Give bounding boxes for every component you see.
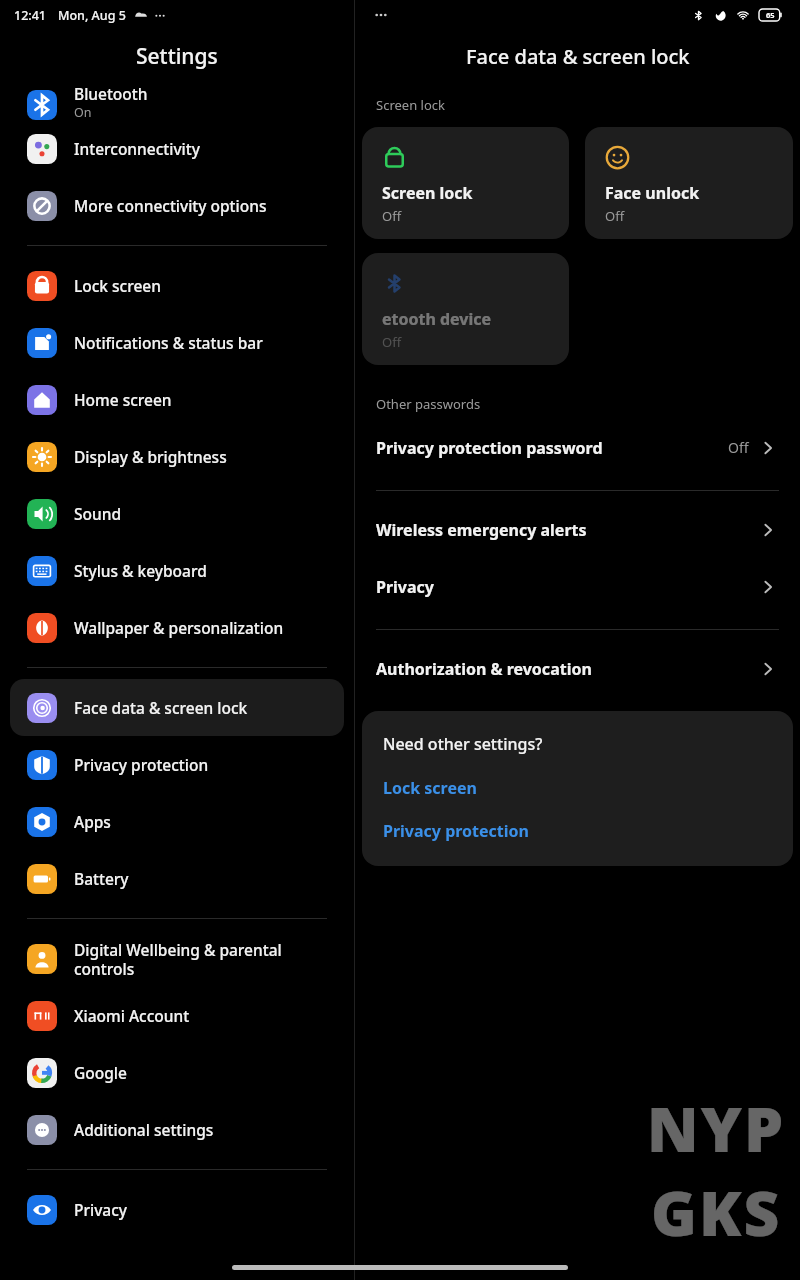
button[interactable]: Digital Wellbeing & parental controls: [10, 930, 344, 987]
button[interactable]: Privacy protection password: [355, 419, 800, 476]
button[interactable]: More connectivity options: [10, 177, 344, 234]
staticText: Settings: [136, 42, 218, 71]
staticText: Authorization & revocation: [376, 658, 757, 680]
staticText: Privacy: [74, 1199, 128, 1220]
button[interactable]: Stylus & keyboard: [10, 542, 344, 599]
staticText: Interconnectivity: [74, 138, 200, 159]
staticText: Off: [382, 207, 402, 225]
staticText: Screen lock: [382, 182, 473, 204]
staticText: Privacy: [376, 576, 757, 598]
staticText: etooth device: [382, 308, 492, 330]
button[interactable]: Battery: [10, 850, 344, 907]
button[interactable]: Sound: [10, 485, 344, 542]
staticText: Face data & screen lock: [466, 43, 690, 70]
button[interactable]: Face unlock: [585, 127, 793, 239]
staticText: 12:41: [14, 7, 47, 24]
staticText: GKS: [651, 1170, 782, 1254]
button[interactable]: Wallpaper & personalization: [10, 599, 344, 656]
button[interactable]: Screen lock: [362, 127, 569, 239]
staticText: Xiaomi Account: [74, 1005, 190, 1026]
staticText: Wireless emergency alerts: [376, 519, 757, 541]
button[interactable]: Privacy protection: [383, 820, 529, 842]
staticText: Mon, Aug 5: [58, 7, 126, 24]
staticText: Apps: [74, 811, 111, 832]
staticText: Privacy protection password: [376, 437, 728, 459]
staticText: Battery: [74, 868, 129, 889]
staticText: Wallpaper & personalization: [74, 617, 284, 638]
staticText: 65: [766, 10, 775, 20]
staticText: More connectivity options: [74, 195, 267, 216]
button[interactable]: Privacy: [355, 558, 800, 615]
staticText: Off: [605, 207, 625, 225]
button[interactable]: Privacy: [10, 1181, 344, 1238]
staticText: Google: [74, 1062, 127, 1083]
staticText: Off: [728, 438, 749, 457]
staticText: Home screen: [74, 389, 172, 410]
staticText: Display & brightness: [74, 446, 227, 467]
staticText: Notifications & status bar: [74, 332, 263, 353]
staticText: Sound: [74, 503, 122, 524]
button[interactable]: Google: [10, 1044, 344, 1101]
staticText: Face data & screen lock: [74, 697, 248, 718]
button[interactable]: Notifications & status bar: [10, 314, 344, 371]
button[interactable]: Wireless emergency alerts: [355, 501, 800, 558]
button[interactable]: etooth device: [362, 253, 569, 365]
staticText: NYP: [647, 1086, 786, 1170]
staticText: Digital Wellbeing & parental controls: [74, 939, 282, 979]
button[interactable]: Apps: [10, 793, 344, 850]
staticText: Face unlock: [605, 182, 700, 204]
staticText: Screen lock: [376, 96, 445, 114]
button[interactable]: More options: [373, 7, 389, 23]
button[interactable]: Lock screen: [10, 257, 344, 314]
button[interactable]: Face data & screen lock: [10, 679, 344, 736]
button[interactable]: Additional settings: [10, 1101, 344, 1158]
staticText: Privacy protection: [383, 820, 529, 842]
staticText: Lock screen: [74, 275, 161, 296]
staticText: Stylus & keyboard: [74, 560, 207, 581]
button[interactable]: Authorization & revocation: [355, 640, 800, 697]
staticText: Need other settings?: [383, 733, 543, 755]
button[interactable]: Display & brightness: [10, 428, 344, 485]
staticText: Other passwords: [376, 395, 481, 413]
staticText: Additional settings: [74, 1119, 214, 1140]
button[interactable]: Xiaomi Account: [10, 987, 344, 1044]
button[interactable]: Home screen: [10, 371, 344, 428]
staticText: On: [74, 104, 92, 120]
staticText: Off: [382, 333, 402, 351]
staticText: Bluetooth: [74, 83, 148, 104]
staticText: Lock screen: [383, 777, 477, 799]
button[interactable]: Privacy protection: [10, 736, 344, 793]
button[interactable]: Lock screen: [383, 777, 477, 799]
button[interactable]: Interconnectivity: [10, 120, 344, 177]
staticText: Privacy protection: [74, 754, 209, 775]
